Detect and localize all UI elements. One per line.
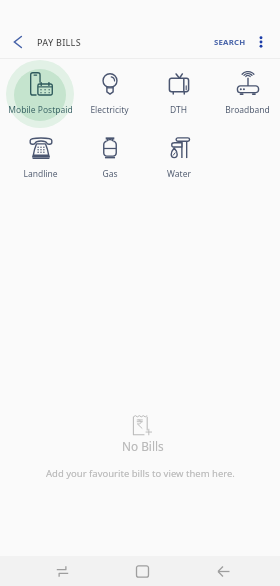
staticText: Mobile Postpaid: [8, 104, 73, 116]
button[interactable]: DTH: [144, 66, 213, 118]
staticText: PAY BILLS: [37, 36, 81, 48]
staticText: Electricity: [90, 104, 129, 116]
button[interactable]: Back: [4, 28, 32, 56]
staticText: No Bills: [122, 438, 164, 454]
button[interactable]: SEARCH: [210, 28, 250, 56]
button[interactable]: Water: [144, 130, 213, 182]
staticText: Landline: [23, 168, 58, 180]
button[interactable]: Recents: [46, 556, 79, 586]
staticText: SEARCH: [214, 37, 246, 48]
button[interactable]: Broadband: [213, 66, 280, 118]
button[interactable]: Gas: [75, 130, 144, 182]
staticText: Water: [167, 168, 191, 180]
button[interactable]: Landline: [6, 130, 75, 182]
button[interactable]: Electricity: [75, 66, 144, 118]
button[interactable]: Back: [207, 556, 240, 586]
staticText: Gas: [102, 168, 118, 180]
staticText: Add your favourite bills to view them he…: [46, 467, 235, 480]
staticText: DTH: [170, 104, 187, 116]
staticText: Broadband: [225, 104, 270, 116]
button[interactable]: More options: [249, 30, 273, 54]
button[interactable]: Mobile Postpaid: [6, 66, 75, 118]
button[interactable]: Home: [126, 556, 159, 586]
